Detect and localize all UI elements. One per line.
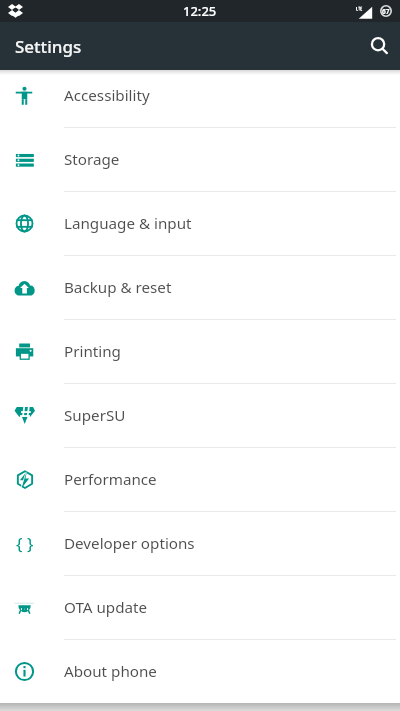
button[interactable]: Performance — [0, 447, 400, 511]
staticText: 12:25 — [183, 2, 217, 20]
staticText: Printing — [64, 341, 121, 362]
staticText: About phone — [64, 661, 157, 682]
staticText: Backup & reset — [64, 277, 172, 298]
button[interactable]: SuperSU — [0, 383, 400, 447]
staticText: 67 — [382, 7, 390, 16]
staticText: OTA update — [64, 597, 148, 618]
button[interactable]: OTA update — [0, 575, 400, 639]
button[interactable]: Storage — [0, 127, 400, 191]
button[interactable]: Search — [356, 24, 400, 68]
staticText: { } — [16, 532, 34, 555]
button[interactable]: Backup & reset — [0, 255, 400, 319]
staticText: Developer options — [64, 533, 195, 554]
button[interactable]: Language & input — [0, 191, 400, 255]
staticText: SuperSU — [64, 405, 126, 426]
button[interactable]: Accessibility — [0, 63, 400, 127]
staticText: Settings — [15, 35, 82, 58]
staticText: Accessibility — [64, 85, 150, 106]
button[interactable]: Printing — [0, 319, 400, 383]
button[interactable]: About phone — [0, 639, 400, 703]
staticText: Performance — [64, 469, 157, 490]
staticText: Storage — [64, 149, 120, 170]
staticText: Language & input — [64, 213, 192, 234]
button[interactable]: { } — [0, 511, 400, 575]
